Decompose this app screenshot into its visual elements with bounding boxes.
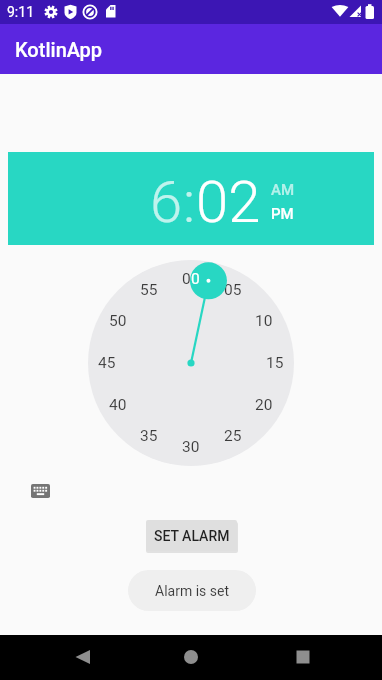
button[interactable]: 30 [176,437,206,457]
staticText: 15 [266,354,284,372]
staticText: 25 [224,427,242,445]
button[interactable]: 50 [103,311,133,331]
button[interactable]: 25 [218,426,248,446]
staticText: KotlinApp [15,38,103,61]
button[interactable]: AM [271,181,295,199]
staticText: 0 [191,270,200,288]
button[interactable] [289,644,317,672]
staticText: 40 [109,396,127,414]
staticText: SET ALARM [154,528,230,544]
button[interactable]: 02 [196,168,261,236]
button[interactable]: 6 [150,168,183,236]
staticText: 35 [140,427,158,445]
button[interactable] [68,644,96,672]
staticText: 00 [182,270,200,288]
button[interactable]: SET ALARM [146,520,237,551]
staticText: Alarm is set [155,583,229,599]
staticText: 30 [182,438,200,456]
button[interactable]: 40 [103,395,133,415]
button[interactable]: PM [271,205,294,223]
button[interactable]: 55 [134,280,164,300]
staticText: 45 [98,354,116,372]
staticText: 05 [224,281,242,299]
button[interactable]: 35 [134,426,164,446]
button[interactable]: 05 [218,280,248,300]
staticText: 20 [255,396,273,414]
button[interactable] [31,484,50,498]
button[interactable]: 45 [92,353,122,373]
staticText: : [183,168,196,236]
staticText: 55 [140,281,158,299]
staticText: 9:11 [7,4,34,20]
button[interactable]: 10 [249,311,279,331]
button[interactable]: 00 [176,269,206,289]
button[interactable]: 15 [260,353,290,373]
button[interactable] [177,644,205,672]
button[interactable]: 20 [249,395,279,415]
staticText: 50 [109,312,127,330]
staticText: 10 [255,312,273,330]
